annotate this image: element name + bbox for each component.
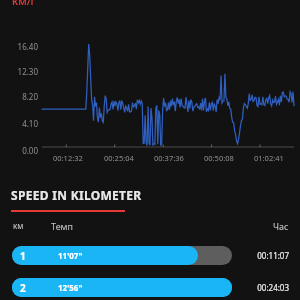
staticText: Темп [51, 220, 73, 232]
staticText: 00:37:36 [154, 153, 184, 163]
staticText: 4.10 [22, 118, 38, 129]
staticText: SPEED IN KILOMETER [11, 187, 142, 203]
staticText: 00:50:08 [204, 153, 234, 163]
staticText: 11'07" [58, 250, 83, 261]
staticText: 8.20 [22, 91, 38, 102]
staticText: 1 [20, 249, 26, 263]
staticText: км [13, 220, 24, 231]
staticText: 16.40 [17, 41, 38, 52]
staticText: 01:02:41 [254, 153, 284, 163]
staticText: 2 [20, 281, 26, 295]
button[interactable]: 1 [0, 242, 300, 268]
staticText: 12.30 [17, 66, 38, 77]
staticText: 0.00 [22, 145, 38, 156]
staticText: 00:25:04 [104, 153, 134, 163]
staticText: Час [273, 220, 289, 232]
staticText: 12'56" [58, 282, 83, 293]
staticText: 00:11:07 [257, 250, 289, 261]
staticText: 00:12:32 [53, 153, 83, 163]
staticText: 00:24:03 [257, 282, 289, 293]
button[interactable]: 2 [0, 275, 300, 300]
staticText: КМ/Г [12, 0, 36, 5]
